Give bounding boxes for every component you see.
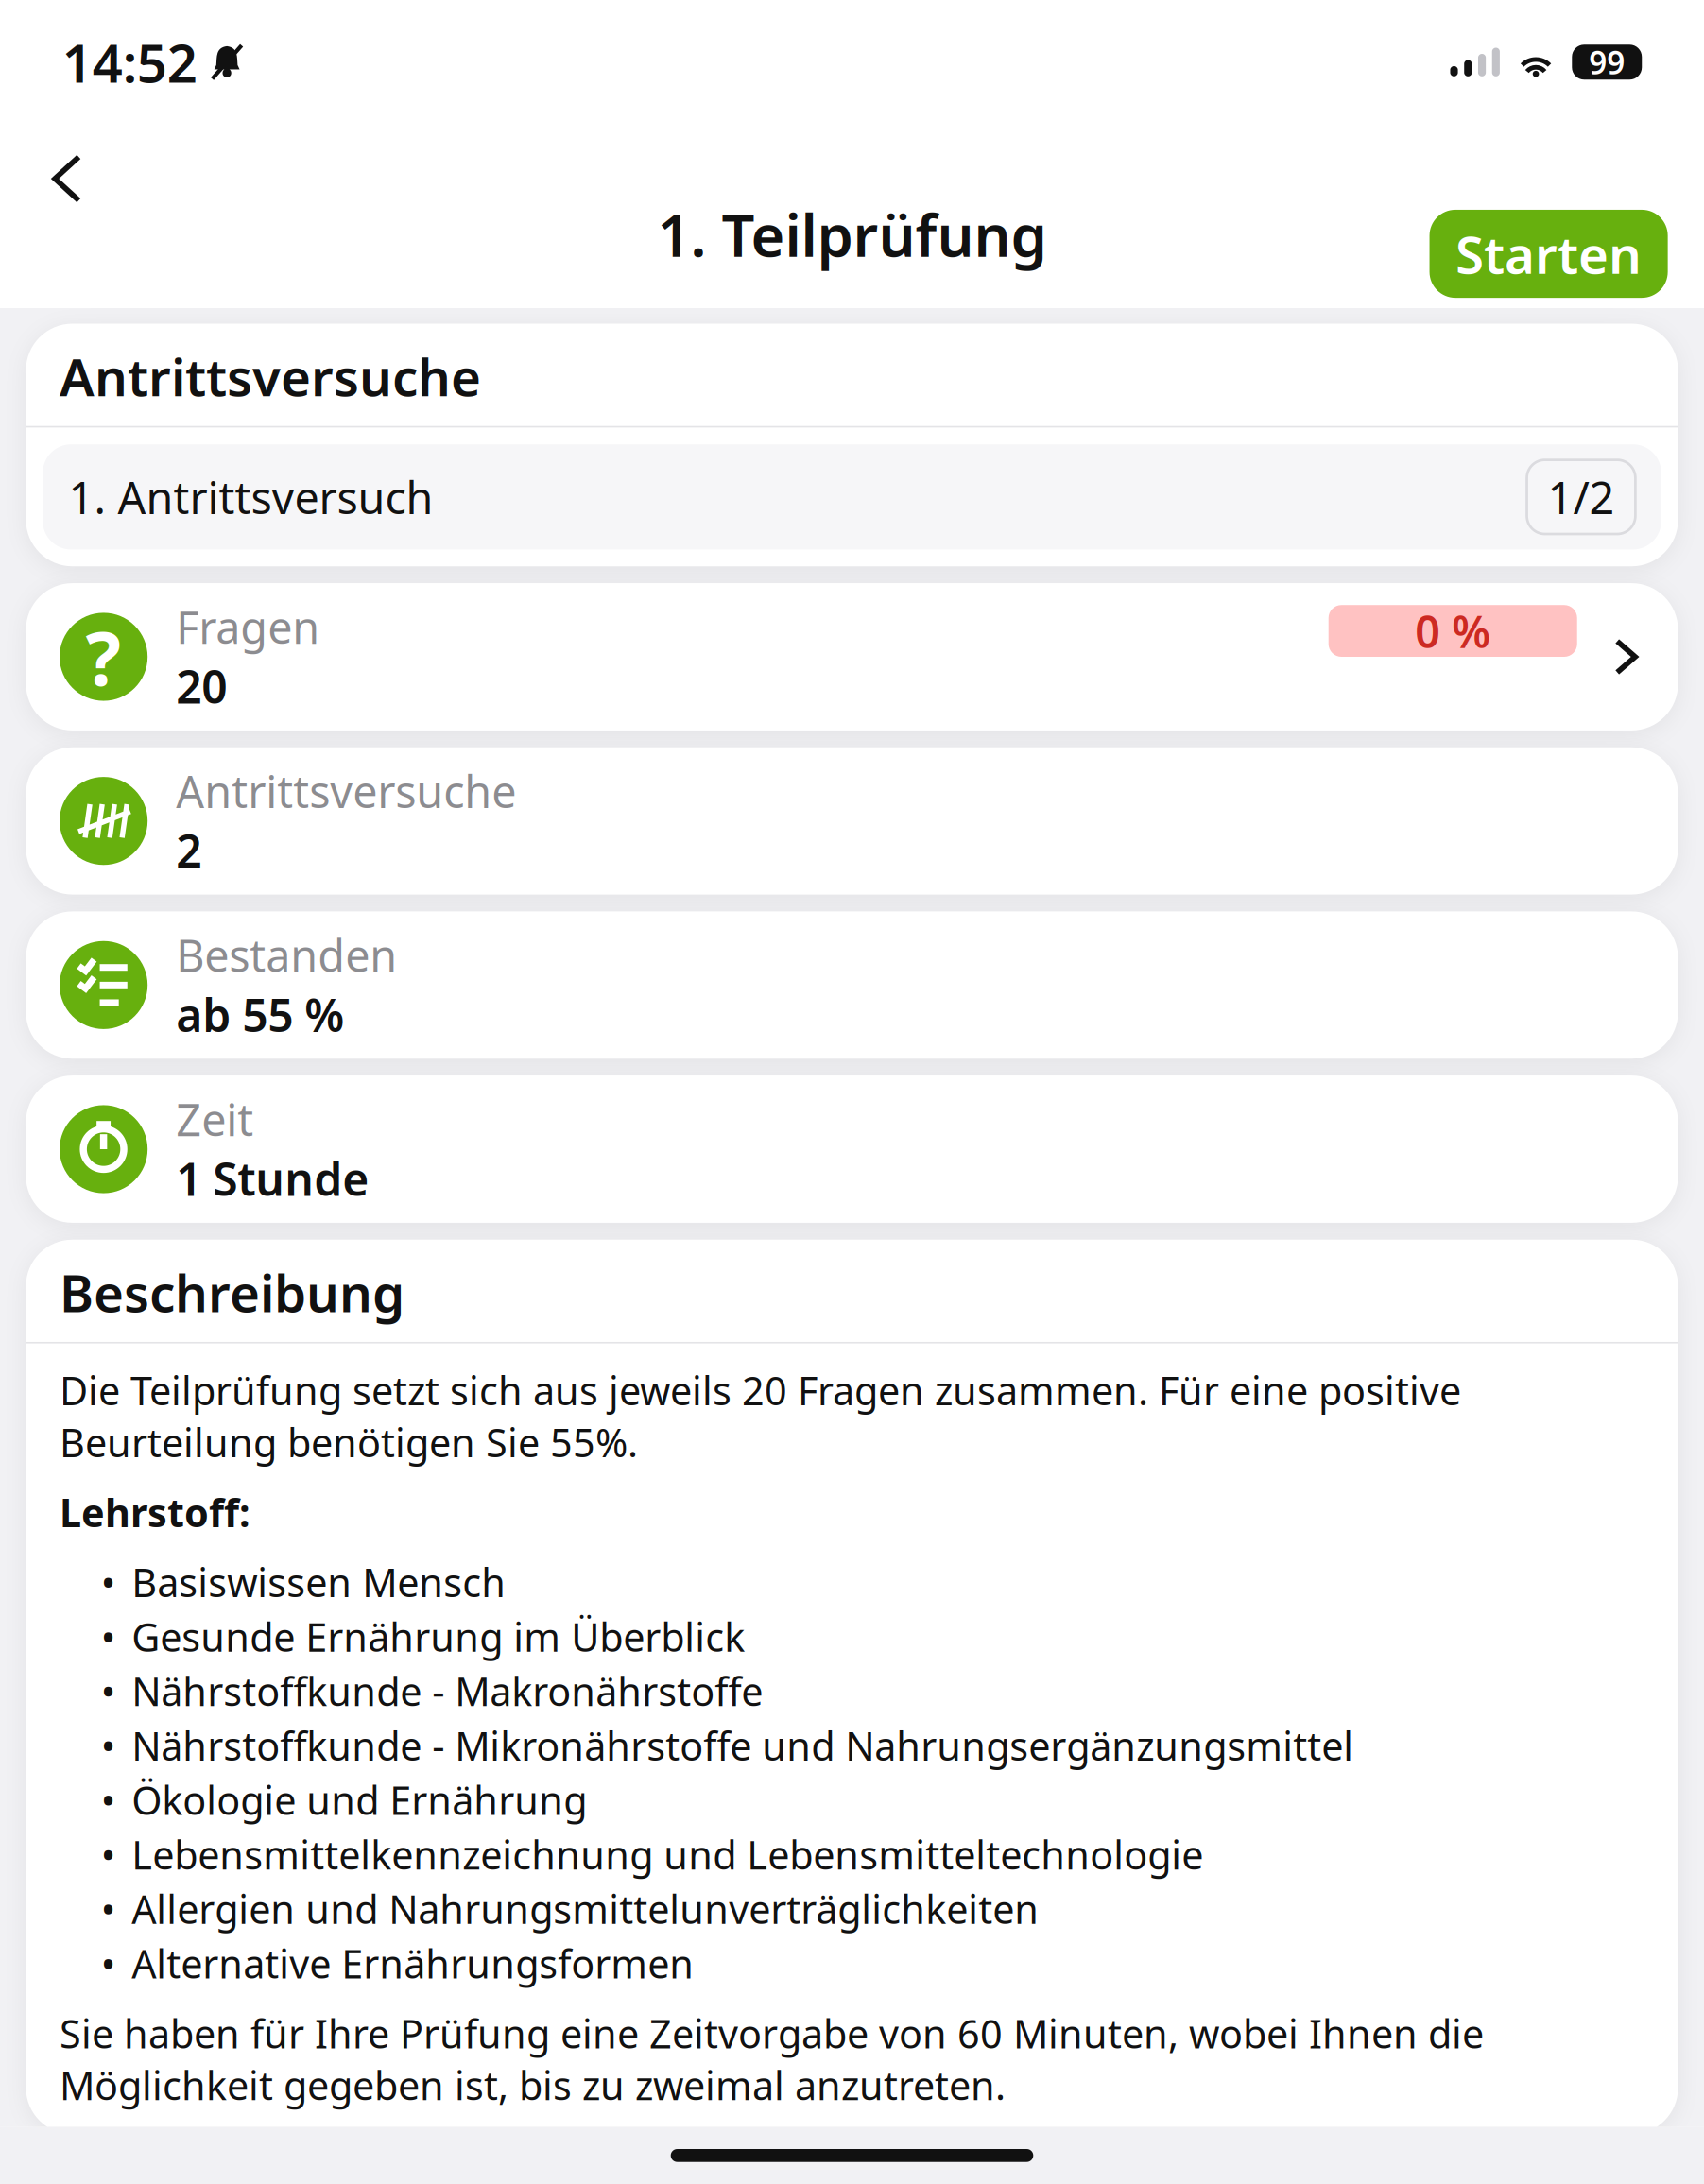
staticText: Die Teilprüfung setzt sich aus jeweils 2…	[60, 1364, 1461, 1468]
staticText: 99	[1589, 41, 1625, 83]
staticText: Beschreibung	[60, 1258, 404, 1326]
staticText: •	[101, 1665, 116, 1717]
staticText: Nährstoffkunde - Makronährstoffe	[132, 1665, 763, 1717]
staticText: •	[101, 1774, 116, 1826]
staticText: Gesunde Ernährung im Überblick	[132, 1611, 745, 1662]
staticText: Sie haben für Ihre Prüfung eine Zeitvorg…	[60, 2007, 1484, 2111]
button[interactable]: Zurück	[0, 124, 155, 223]
staticText: 14:52	[62, 27, 197, 97]
staticText: Basiswissen Mensch	[132, 1556, 506, 1608]
staticText: •	[101, 1556, 116, 1608]
staticText: •	[101, 1883, 116, 1935]
staticText: ?	[86, 607, 122, 706]
staticText: Ökologie und Ernährung	[132, 1774, 587, 1826]
staticText: •	[101, 1828, 116, 1880]
staticText: 2	[176, 820, 202, 880]
staticText: Fragen	[176, 597, 320, 656]
staticText: ab 55 %	[176, 984, 344, 1044]
staticText: 1 Stunde	[176, 1148, 369, 1209]
button[interactable]: Starten	[1430, 210, 1668, 298]
staticText: Antrittsversuche	[176, 762, 516, 820]
staticText: 1. Teilprüfung	[657, 196, 1047, 273]
staticText: 1. Antrittsversuch	[69, 468, 433, 526]
staticText: •	[101, 1611, 116, 1662]
staticText: Antrittsversuche	[60, 342, 481, 410]
staticText: Lebensmittelkennzeichnung und Lebensmitt…	[132, 1828, 1203, 1880]
staticText: Allergien und Nahrungsmittelunverträglic…	[132, 1883, 1039, 1935]
staticText: Bestanden	[176, 926, 397, 984]
staticText: Alternative Ernährungsformen	[132, 1937, 694, 1989]
staticText: Starten	[1456, 219, 1642, 288]
staticText: Nährstoffkunde - Mikronährstoffe und Nah…	[132, 1719, 1354, 1771]
button[interactable]: ?	[26, 583, 1678, 731]
staticText: •	[101, 1719, 116, 1771]
staticText: Lehrstoff:	[60, 1486, 250, 1538]
staticText: •	[101, 1937, 116, 1989]
staticText: 1/2	[1548, 468, 1615, 526]
staticText: 0 %	[1415, 602, 1491, 660]
staticText: Zeit	[176, 1090, 254, 1148]
staticText: 20	[176, 656, 227, 716]
button[interactable]: 1. Antrittsversuch	[26, 428, 1678, 566]
